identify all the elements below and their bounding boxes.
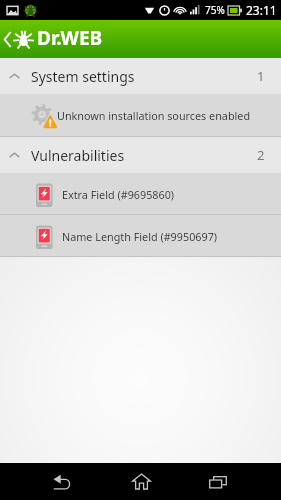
button[interactable]: Name Length Field (#9950697) <box>0 215 281 257</box>
staticText: Vulnerabilities <box>31 146 125 165</box>
button[interactable]: System settings <box>0 58 281 94</box>
staticText: System settings <box>31 67 135 86</box>
staticText: Name Length Field (#9950697) <box>62 229 218 244</box>
button[interactable]: Recent apps <box>159 463 281 500</box>
button[interactable]: Extra Field (#9695860) <box>0 173 281 215</box>
staticText: Dr.WEB <box>37 25 103 51</box>
button[interactable]: Unknown installation sources enabled <box>0 94 281 137</box>
staticText: 75% <box>205 3 225 17</box>
staticText: 2 <box>257 146 265 164</box>
button[interactable]: Home <box>123 463 159 500</box>
staticText: Extra Field (#9695860) <box>62 187 175 202</box>
staticText: Unknown installation sources enabled <box>57 108 251 123</box>
button[interactable]: Navigate up <box>0 20 14 58</box>
staticText: 23:11 <box>246 2 277 18</box>
staticText: 1 <box>257 67 265 85</box>
button[interactable]: Vulnerabilities <box>0 137 281 173</box>
button[interactable]: Back <box>0 463 123 500</box>
